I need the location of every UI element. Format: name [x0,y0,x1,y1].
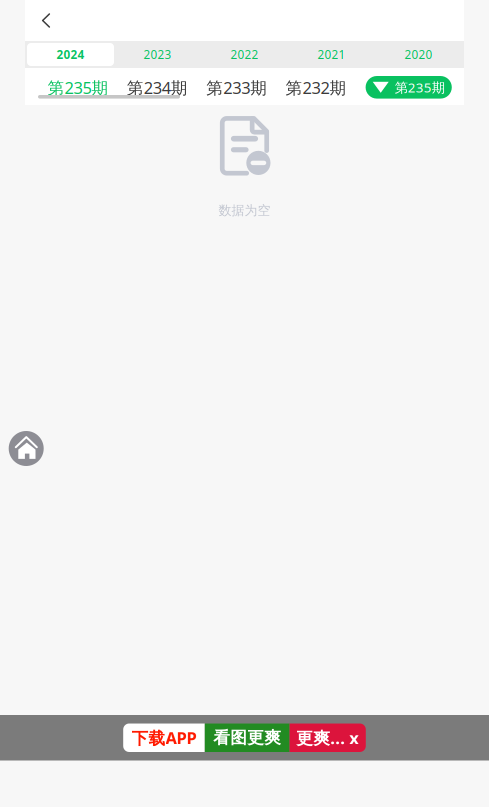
button[interactable]: Back [25,0,67,41]
button[interactable]: 2020 [375,43,462,66]
button[interactable]: 2022 [201,43,288,66]
button[interactable]: 2023 [114,43,201,66]
button[interactable]: 2021 [288,43,375,66]
staticText: 更爽... x [296,726,359,749]
button[interactable]: 第233期 [206,68,286,105]
staticText: 2023 [143,46,171,62]
button[interactable]: 2024 [27,43,114,66]
button[interactable]: Home [9,431,44,466]
staticText: 2022 [230,46,258,62]
button[interactable]: 第232期 [286,68,365,105]
button[interactable]: 下载APP [123,723,205,752]
staticText: 看图更爽 [213,727,281,748]
staticText: 2024 [56,46,84,62]
button[interactable]: 第235期 [366,76,452,99]
staticText: 第232期 [286,76,347,99]
staticText: 第235期 [395,78,445,96]
button[interactable]: 看图更爽 [205,723,290,752]
button[interactable]: 第234期 [127,68,206,105]
button[interactable]: 第235期 [47,68,127,105]
staticText: 第235期 [47,76,108,99]
staticText: 2020 [404,46,432,62]
button[interactable]: 更爽... x [290,723,366,752]
staticText: 第233期 [206,76,267,99]
staticText: 第234期 [127,76,188,99]
staticText: 数据为空 [218,202,270,219]
staticText: 下载APP [131,726,196,749]
staticText: 2021 [317,46,345,62]
